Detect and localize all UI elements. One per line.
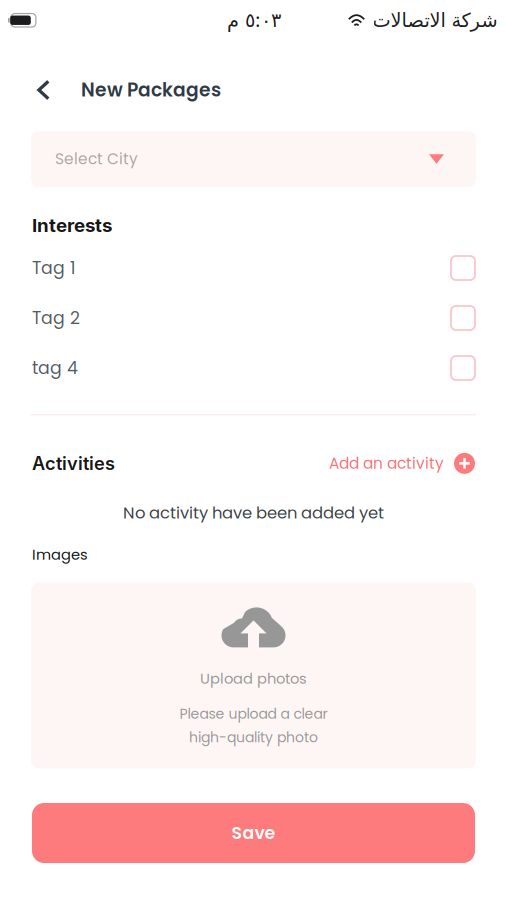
staticText: Images — [32, 544, 88, 565]
button[interactable]: Tag 2 — [0, 293, 507, 343]
button[interactable]: Add an activity — [329, 453, 475, 474]
staticText: Select City — [55, 148, 138, 170]
staticText: شركة الاتصالات — [372, 9, 497, 31]
staticText: Save — [231, 821, 275, 845]
staticText: New Packages — [81, 77, 221, 103]
staticText: Tag 1 — [32, 256, 76, 280]
staticText: Tag 2 — [32, 306, 80, 330]
staticText: Upload photos — [200, 668, 307, 689]
button[interactable]: Upload photos — [0, 582, 507, 768]
staticText: high-quality photo — [189, 727, 318, 747]
button[interactable]: Back — [0, 64, 81, 116]
staticText: Add an activity — [329, 453, 444, 474]
staticText: No activity have been added yet — [123, 501, 384, 524]
staticText: Activities — [32, 452, 115, 474]
staticText: tag 4 — [32, 356, 78, 380]
staticText: Please upload a clear — [179, 704, 327, 723]
staticText: ٥:٠٣ م — [226, 8, 280, 32]
button[interactable]: tag 4 — [0, 343, 507, 393]
button[interactable]: Tag 1 — [0, 243, 507, 293]
staticText: Interests — [32, 214, 112, 237]
button[interactable]: Save — [0, 803, 507, 900]
button[interactable]: Select City — [0, 131, 507, 187]
